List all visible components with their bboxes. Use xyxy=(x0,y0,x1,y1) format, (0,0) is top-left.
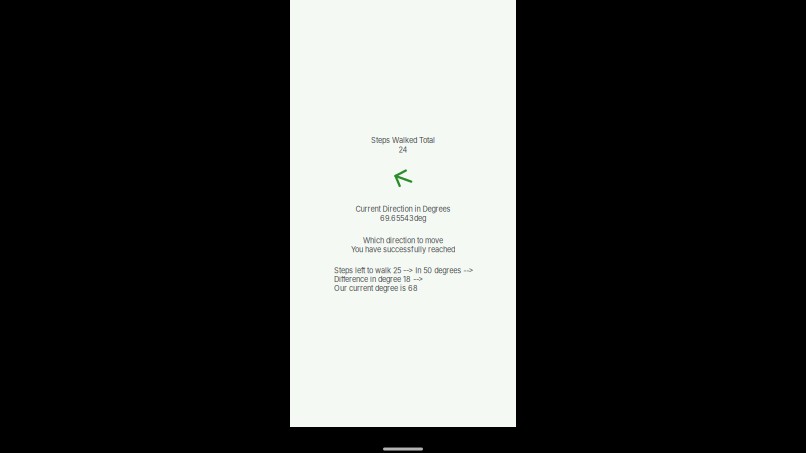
staticText: Which direction to move xyxy=(363,236,443,245)
staticText: > In 50 degrees -- xyxy=(408,266,469,275)
staticText: 69.65543deg xyxy=(380,214,426,223)
staticText: Difference in degree 18 -- xyxy=(334,275,419,284)
staticText: Current Direction in Degrees xyxy=(355,205,450,214)
staticText: > xyxy=(418,275,423,284)
staticText: You have successfully reached xyxy=(351,245,455,254)
staticText: Our current degree is 68 xyxy=(334,284,418,293)
staticText: 24 xyxy=(398,145,407,154)
staticText: > xyxy=(469,266,474,275)
staticText: Steps Walked Total xyxy=(371,136,435,145)
staticText: Steps left to walk 25 -- xyxy=(334,266,409,275)
